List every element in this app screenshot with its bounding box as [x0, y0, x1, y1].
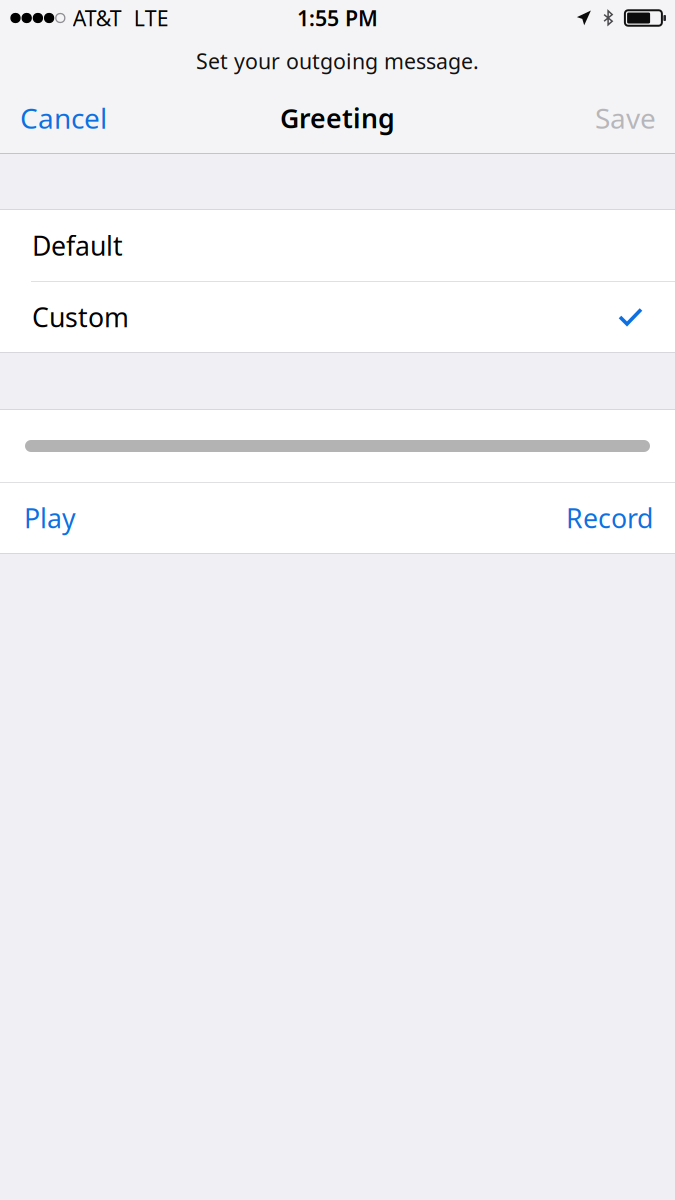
staticText: Default: [32, 228, 123, 263]
staticText: Custom: [32, 299, 129, 335]
staticText: Set your outgoing message.: [196, 47, 479, 75]
staticText: Play: [24, 500, 76, 536]
staticText: Record: [566, 500, 653, 536]
staticText: Save: [595, 99, 656, 137]
staticText: Greeting: [280, 100, 395, 136]
staticText: AT&T: [73, 4, 122, 32]
button[interactable]: Record: [546, 482, 675, 553]
button[interactable]: Save: [579, 86, 675, 150]
staticText: LTE: [134, 4, 169, 32]
button[interactable]: Play: [0, 482, 96, 553]
button[interactable]: Custom: [0, 282, 675, 352]
button[interactable]: Cancel: [0, 86, 123, 150]
button[interactable]: Default: [0, 210, 675, 281]
staticText: 1:55 PM: [297, 4, 378, 32]
staticText: Cancel: [20, 99, 107, 137]
